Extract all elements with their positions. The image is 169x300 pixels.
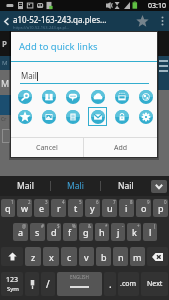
staticText: *: [105, 223, 108, 229]
staticText: v: [84, 251, 89, 263]
staticText: -: [122, 223, 124, 229]
button[interactable]: b: [96, 247, 111, 266]
staticText: Next: [147, 279, 163, 289]
staticText: a10-52-163-243.qa.ples...: [13, 14, 107, 25]
button[interactable]: x: [43, 247, 59, 266]
button[interactable]: d: [47, 223, 61, 241]
button[interactable]: 123: [1, 272, 23, 296]
staticText: w: [21, 202, 29, 214]
staticText: %: [72, 223, 76, 229]
button[interactable]: Shift: [1, 247, 23, 266]
button[interactable]: Star: [15, 107, 34, 126]
staticText: 123: [6, 275, 19, 285]
button[interactable]: q: [1, 199, 15, 217]
staticText: g: [83, 226, 89, 238]
staticText: $: [57, 223, 60, 229]
button[interactable]: u: [102, 199, 117, 217]
button[interactable]: Bookmark: [129, 11, 155, 31]
button[interactable]: More suggestions: [151, 180, 167, 193]
staticText: 5: [79, 199, 82, 205]
button[interactable]: Voice input: [25, 272, 39, 296]
staticText: p: [158, 202, 164, 214]
staticText: 4: [62, 199, 65, 205]
button[interactable]: i: [119, 199, 134, 217]
button[interactable]: Mali: [51, 176, 100, 196]
staticText: Mali: [67, 180, 84, 192]
staticText: 9: [147, 199, 150, 205]
button[interactable]: y: [85, 199, 100, 217]
button[interactable]: o: [136, 199, 151, 217]
button[interactable]: Globe: [136, 87, 155, 106]
button[interactable]: Back: [0, 11, 13, 31]
staticText: &: [88, 223, 92, 229]
staticText: P: [2, 38, 7, 49]
staticText: x: [49, 251, 54, 263]
button[interactable]: Camera: [39, 107, 58, 126]
button[interactable]: l: [143, 223, 157, 241]
staticText: 1: [11, 199, 14, 205]
button[interactable]: g: [79, 223, 93, 241]
staticText: d: [51, 226, 57, 238]
staticText: #: [41, 223, 44, 229]
button[interactable]: /: [41, 272, 55, 296]
button[interactable]: More options: [155, 11, 169, 31]
staticText: 2: [28, 199, 31, 205]
button[interactable]: k: [127, 223, 141, 241]
staticText: ENGLISH: [70, 274, 89, 280]
button[interactable]: a: [13, 223, 28, 241]
button[interactable]: Chat: [63, 87, 82, 106]
button[interactable]: Nail: [101, 176, 151, 196]
staticText: /: [46, 277, 50, 291]
staticText: e: [39, 202, 45, 214]
button[interactable]: Mail: [0, 176, 50, 196]
button[interactable]: r: [51, 199, 66, 217]
button[interactable]: t: [68, 199, 83, 217]
button[interactable]: v: [79, 247, 94, 266]
staticText: 6: [96, 199, 99, 205]
staticText: u: [107, 202, 113, 214]
staticText: +: [137, 223, 140, 229]
staticText: .: [109, 277, 112, 291]
button[interactable]: .com: [118, 272, 139, 296]
staticText: 7: [113, 199, 116, 205]
button[interactable]: .: [104, 272, 116, 296]
button[interactable]: Mail: [88, 107, 107, 126]
staticText: @: [22, 223, 27, 229]
button[interactable]: w: [17, 199, 32, 217]
staticText: s: [35, 226, 40, 238]
staticText: z: [31, 251, 36, 263]
button[interactable]: Lock: [112, 107, 131, 126]
button[interactable]: p: [153, 199, 168, 217]
button[interactable]: c: [61, 247, 77, 266]
button[interactable]: n: [113, 247, 128, 266]
button[interactable]: h: [95, 223, 109, 241]
button[interactable]: j: [111, 223, 125, 241]
button[interactable]: f: [63, 223, 77, 241]
staticText: Mail: [21, 70, 37, 81]
button[interactable]: e: [34, 199, 49, 217]
button[interactable]: Space: [57, 272, 102, 296]
button[interactable]: Key: [15, 87, 34, 106]
button[interactable]: Settings: [136, 107, 155, 126]
staticText: m: [133, 251, 142, 263]
button[interactable]: Backspace: [147, 247, 168, 266]
staticText: r: [57, 202, 61, 214]
button[interactable]: z: [25, 247, 41, 266]
button[interactable]: Document: [63, 107, 82, 126]
button[interactable]: Next: [141, 272, 168, 296]
staticText: j: [117, 226, 120, 238]
button[interactable]: Calendar: [112, 87, 131, 106]
staticText: (: [154, 223, 156, 229]
button[interactable]: Add: [84, 138, 157, 157]
button[interactable]: m: [130, 247, 145, 266]
staticText: 0: [164, 199, 167, 205]
button[interactable]: Cancel: [11, 138, 83, 157]
staticText: n: [118, 251, 124, 263]
staticText: a: [18, 226, 24, 238]
staticText: Nail: [118, 180, 134, 192]
staticText: y: [90, 202, 95, 214]
button[interactable]: s: [30, 223, 45, 241]
button[interactable]: Cloud: [88, 87, 107, 106]
staticText: o: [141, 202, 147, 214]
button[interactable]: Book: [39, 87, 58, 106]
